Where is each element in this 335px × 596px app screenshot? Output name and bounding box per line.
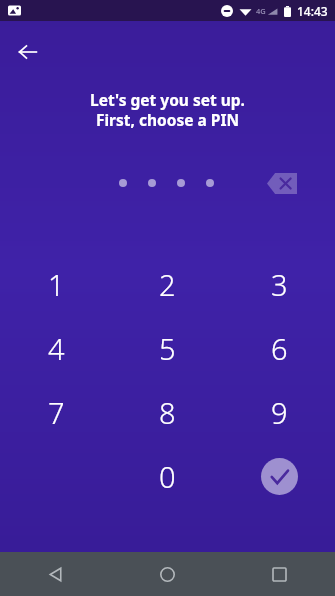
staticText: 5 (159, 329, 176, 368)
button[interactable]: Delete (256, 170, 308, 196)
button[interactable]: Back (0, 552, 111, 596)
button[interactable]: 3 (247, 252, 311, 316)
button[interactable]: 0 (135, 444, 199, 508)
staticText: 0 (159, 457, 176, 496)
button[interactable]: Back (8, 32, 48, 72)
button[interactable]: 1 (24, 252, 88, 316)
button[interactable]: 4 (24, 316, 88, 380)
button[interactable]: 6 (247, 316, 311, 380)
staticText: Let's get you set up. First, choose a PI… (90, 89, 245, 131)
staticText: 3 (271, 265, 288, 304)
button[interactable]: 7 (24, 380, 88, 444)
button[interactable]: 2 (135, 252, 199, 316)
staticText: 7 (48, 393, 65, 432)
button[interactable]: 5 (135, 316, 199, 380)
button[interactable]: Confirm PIN (253, 450, 305, 502)
button[interactable]: Home (111, 552, 223, 596)
button[interactable]: Recent apps (223, 552, 335, 596)
staticText: 2 (159, 265, 176, 304)
staticText: 14:43 (297, 3, 328, 19)
staticText: 6 (271, 329, 288, 368)
staticText: 4 (48, 329, 65, 368)
staticText: 8 (159, 393, 176, 432)
button[interactable]: 8 (135, 380, 199, 444)
staticText: 9 (271, 393, 288, 432)
staticText: 4G (256, 6, 266, 16)
staticText: 1 (48, 265, 65, 304)
button[interactable]: 9 (247, 380, 311, 444)
